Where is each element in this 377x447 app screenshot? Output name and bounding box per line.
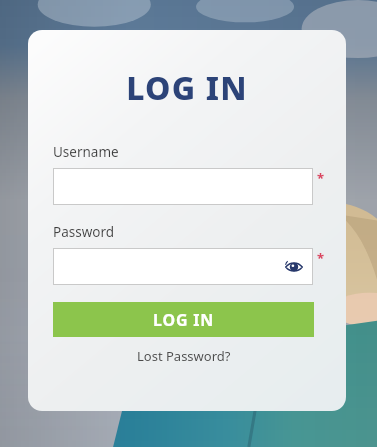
staticText: LOG IN [28,66,346,110]
staticText: Password [53,223,115,241]
button[interactable]: Lost Password? [53,347,314,365]
staticText: * [317,249,325,267]
button[interactable] [53,168,313,205]
staticText: Username [53,143,119,161]
staticText: Lost Password? [137,347,231,365]
button[interactable]: LOG IN [53,302,314,337]
button[interactable]: Show password [53,248,313,285]
staticText: * [317,169,325,187]
staticText: LOG IN [153,309,215,331]
button[interactable]: Show password [281,254,307,280]
